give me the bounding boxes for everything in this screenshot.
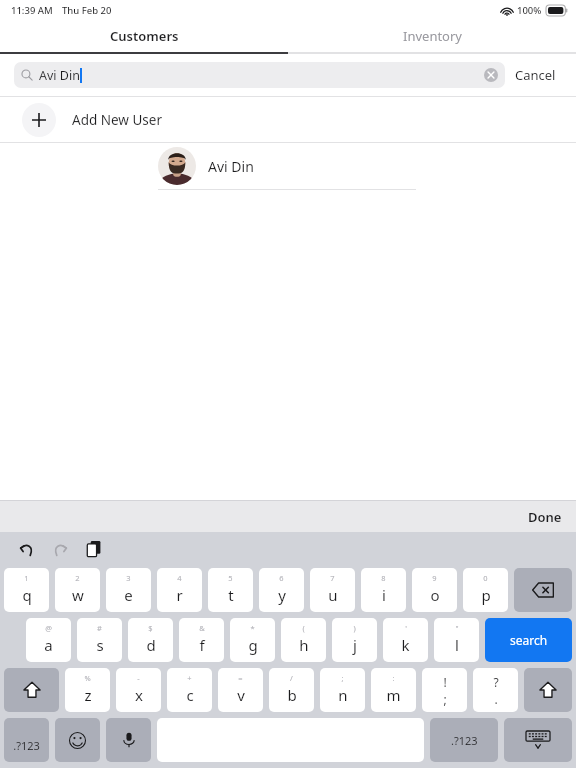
button[interactable]: Add New User: [0, 97, 576, 142]
button[interactable]: *: [230, 618, 275, 662]
button[interactable]: /: [269, 668, 314, 712]
staticText: h: [299, 635, 309, 655]
staticText: Add New User: [72, 111, 162, 129]
button[interactable]: Shift: [4, 668, 59, 712]
button[interactable]: &: [179, 618, 224, 662]
staticText: :: [392, 673, 395, 683]
staticText: %: [84, 673, 91, 683]
staticText: (: [302, 623, 305, 633]
button[interactable]: Dictation: [106, 718, 151, 762]
button[interactable]: 1: [4, 568, 49, 612]
staticText: f: [199, 635, 205, 655]
button[interactable]: Avi Din: [14, 62, 505, 88]
staticText: ): [353, 623, 356, 633]
staticText: e: [124, 585, 133, 605]
staticText: v: [237, 685, 245, 705]
staticText: ;: [443, 691, 447, 707]
staticText: Inventory: [403, 27, 462, 45]
staticText: q: [22, 585, 32, 605]
button[interactable]: Shift: [524, 668, 572, 712]
button[interactable]: $: [128, 618, 173, 662]
staticText: 6: [279, 573, 284, 583]
button[interactable]: :: [371, 668, 416, 712]
button[interactable]: ;: [320, 668, 365, 712]
staticText: 3: [126, 573, 131, 583]
staticText: $: [148, 623, 153, 633]
button[interactable]: 7: [310, 568, 355, 612]
staticText: 11:39 AM: [11, 4, 53, 17]
button[interactable]: Backspace: [514, 568, 572, 612]
button[interactable]: .?123: [4, 718, 49, 762]
staticText: ": [455, 623, 459, 633]
button[interactable]: -: [116, 668, 161, 712]
button[interactable]: Cancel: [505, 60, 566, 90]
button[interactable]: search: [485, 618, 572, 662]
button[interactable]: @: [26, 618, 71, 662]
staticText: &: [199, 623, 205, 633]
button[interactable]: .?123: [430, 718, 498, 762]
staticText: k: [401, 635, 410, 655]
staticText: o: [430, 585, 440, 605]
staticText: 100%: [517, 4, 542, 17]
button[interactable]: Avi Din: [0, 143, 576, 189]
button[interactable]: Paste: [82, 537, 106, 561]
button[interactable]: 6: [259, 568, 304, 612]
staticText: b: [287, 685, 297, 705]
staticText: u: [328, 585, 338, 605]
staticText: d: [146, 635, 156, 655]
staticText: w: [72, 585, 84, 605]
staticText: 1: [24, 573, 29, 583]
staticText: !: [443, 674, 447, 690]
button[interactable]: %: [65, 668, 110, 712]
staticText: Thu Feb 20: [62, 4, 112, 17]
button[interactable]: 5: [208, 568, 253, 612]
staticText: +: [187, 673, 192, 683]
button[interactable]: =: [218, 668, 263, 712]
staticText: Avi Din: [39, 67, 80, 84]
button[interactable]: 2: [55, 568, 100, 612]
staticText: r: [176, 585, 183, 605]
staticText: c: [186, 685, 194, 705]
button[interactable]: Inventory: [288, 20, 576, 52]
button[interactable]: ": [434, 618, 479, 662]
staticText: 4: [177, 573, 182, 583]
staticText: Avi Din: [208, 157, 254, 176]
staticText: a: [44, 635, 53, 655]
button[interactable]: Hide keyboard: [504, 718, 572, 762]
button[interactable]: Redo: [48, 537, 72, 561]
button[interactable]: 9: [412, 568, 457, 612]
staticText: p: [481, 585, 491, 605]
staticText: Cancel: [515, 66, 556, 84]
staticText: =: [238, 673, 243, 683]
button[interactable]: (: [281, 618, 326, 662]
staticText: 9: [432, 573, 437, 583]
staticText: 7: [330, 573, 335, 583]
button[interactable]: ?: [473, 668, 518, 712]
staticText: -: [137, 673, 140, 683]
button[interactable]: 3: [106, 568, 151, 612]
staticText: 0: [483, 573, 488, 583]
staticText: i: [382, 585, 386, 605]
button[interactable]: #: [77, 618, 122, 662]
button[interactable]: 4: [157, 568, 202, 612]
button[interactable]: Done: [514, 502, 576, 532]
staticText: m: [386, 685, 401, 705]
button[interactable]: Customers: [0, 20, 288, 52]
button[interactable]: !: [422, 668, 467, 712]
button[interactable]: Emoji: [55, 718, 100, 762]
button[interactable]: 8: [361, 568, 406, 612]
button[interactable]: 0: [463, 568, 508, 612]
staticText: ;: [341, 673, 344, 683]
staticText: .?123: [13, 738, 40, 753]
staticText: x: [135, 685, 143, 705]
button[interactable]: ': [383, 618, 428, 662]
button[interactable]: +: [167, 668, 212, 712]
staticText: t: [228, 585, 234, 605]
staticText: @: [45, 623, 52, 633]
staticText: Done: [528, 508, 562, 526]
button[interactable]: ): [332, 618, 377, 662]
button[interactable]: Clear text: [484, 68, 498, 82]
button[interactable]: Undo: [14, 537, 38, 561]
staticText: Customers: [110, 27, 179, 45]
